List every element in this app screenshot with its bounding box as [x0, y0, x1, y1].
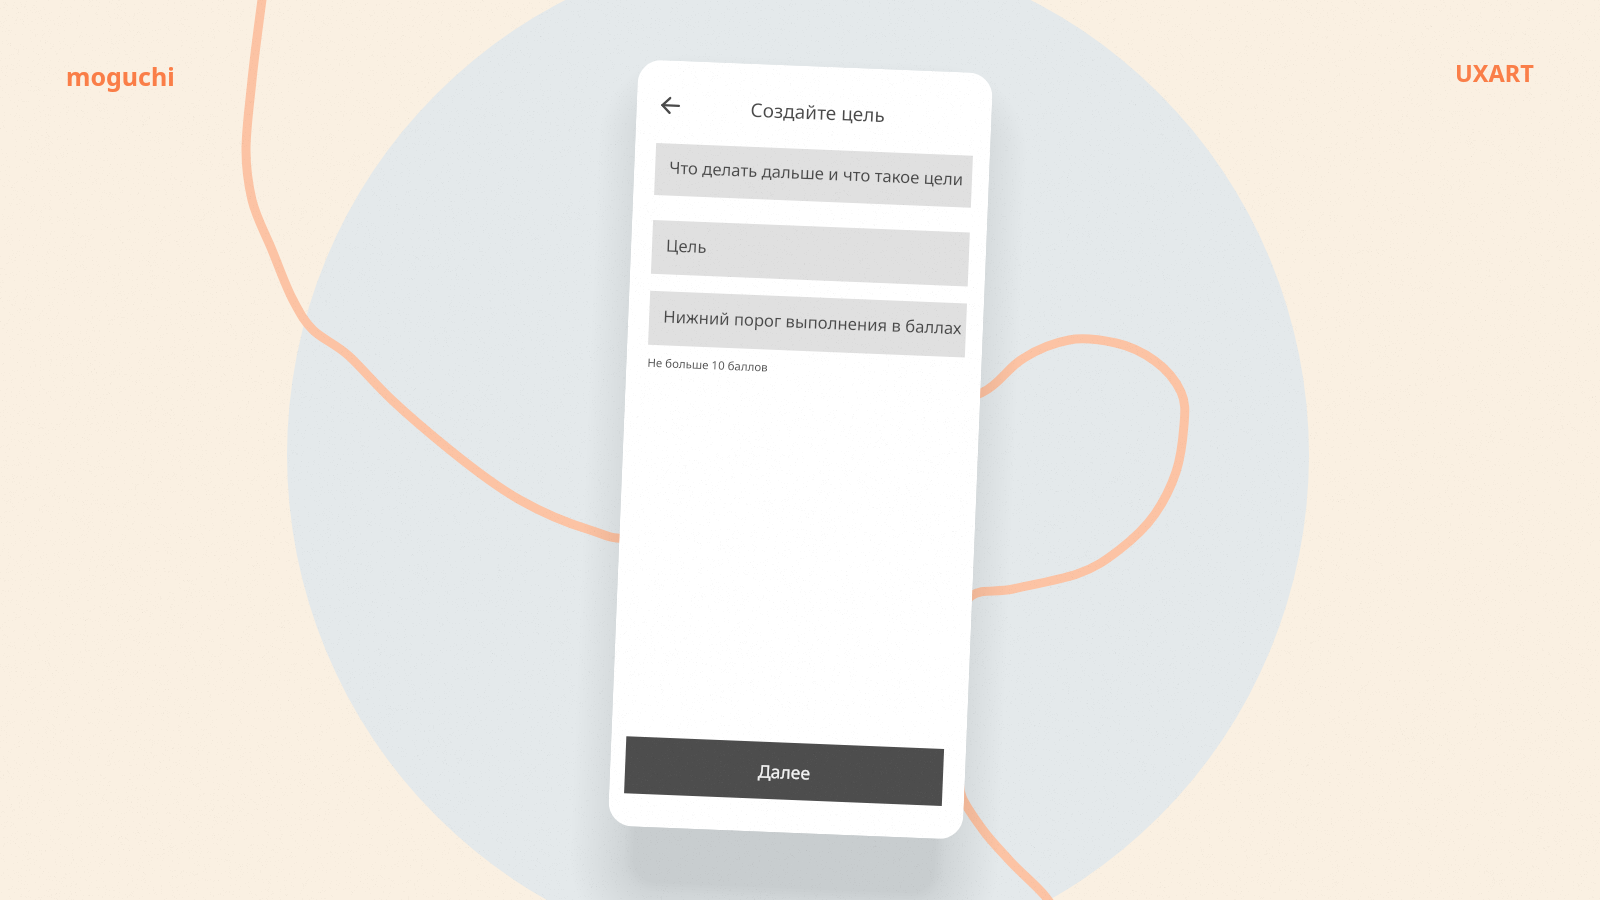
- staticText: Цель: [666, 233, 707, 258]
- button[interactable]: Back: [653, 88, 688, 123]
- staticText: Создайте цель: [750, 97, 886, 128]
- button[interactable]: Далее: [624, 736, 944, 806]
- button[interactable]: Цель: [651, 220, 970, 287]
- staticText: Что делать дальше и что такое цели: [669, 155, 964, 190]
- staticText: moguchi: [66, 59, 175, 93]
- staticText: Не больше 10 баллов: [647, 355, 768, 376]
- button[interactable]: Нижний порог выполнения в баллах: [648, 291, 967, 357]
- staticText: Далее: [758, 759, 811, 785]
- staticText: UXART: [1455, 57, 1534, 89]
- button[interactable]: Что делать дальше и что такое цели: [654, 143, 973, 208]
- staticText: Нижний порог выполнения в баллах: [663, 304, 962, 339]
